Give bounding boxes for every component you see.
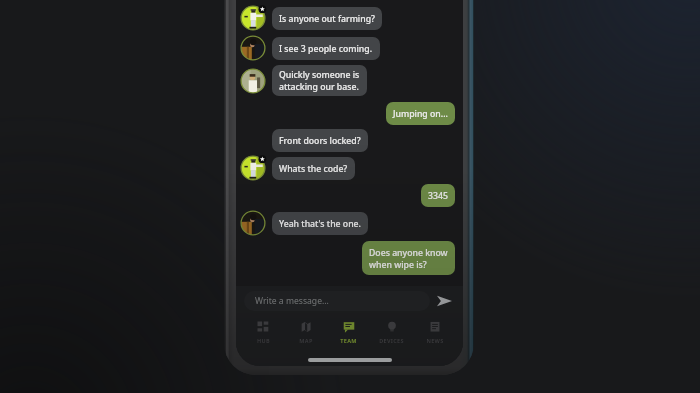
button[interactable]: Jumping on...: [386, 102, 455, 125]
staticText: Whats the code?: [279, 163, 348, 175]
button[interactable]: Quickly someone is attacking our base.: [272, 65, 367, 96]
button[interactable]: NEWS: [413, 316, 456, 348]
staticText: 3345: [428, 190, 448, 202]
button[interactable]: Yeah that's the one.: [272, 212, 368, 235]
staticText: MAP: [299, 337, 313, 344]
staticText: Does anyone know when wipe is?: [369, 247, 448, 270]
staticText: DEVICES: [379, 337, 404, 344]
button[interactable]: I see 3 people coming.: [272, 37, 380, 60]
button[interactable]: Send: [430, 290, 458, 312]
staticText: Jumping on...: [393, 108, 448, 120]
button[interactable]: Front doors locked?: [272, 129, 368, 152]
staticText: Yeah that's the one.: [279, 218, 361, 230]
staticText: Write a message...: [255, 295, 329, 307]
button[interactable]: Whats the code?: [272, 157, 355, 180]
button[interactable]: HUB: [242, 316, 284, 348]
button[interactable]: Is anyone out farming?: [272, 7, 382, 30]
button[interactable]: TEAM: [327, 316, 370, 348]
button[interactable]: MAP: [284, 316, 327, 348]
staticText: I see 3 people coming.: [279, 43, 373, 55]
staticText: TEAM: [340, 337, 357, 344]
staticText: Is anyone out farming?: [279, 13, 375, 25]
button[interactable]: Does anyone know when wipe is?: [362, 241, 455, 275]
staticText: NEWS: [426, 337, 444, 344]
button[interactable]: Write a message...: [244, 291, 430, 311]
button[interactable]: DEVICES: [370, 316, 413, 348]
staticText: Front doors locked?: [279, 135, 361, 147]
staticText: HUB: [257, 337, 270, 344]
staticText: Quickly someone is attacking our base.: [279, 69, 360, 92]
button[interactable]: 3345: [421, 184, 455, 207]
